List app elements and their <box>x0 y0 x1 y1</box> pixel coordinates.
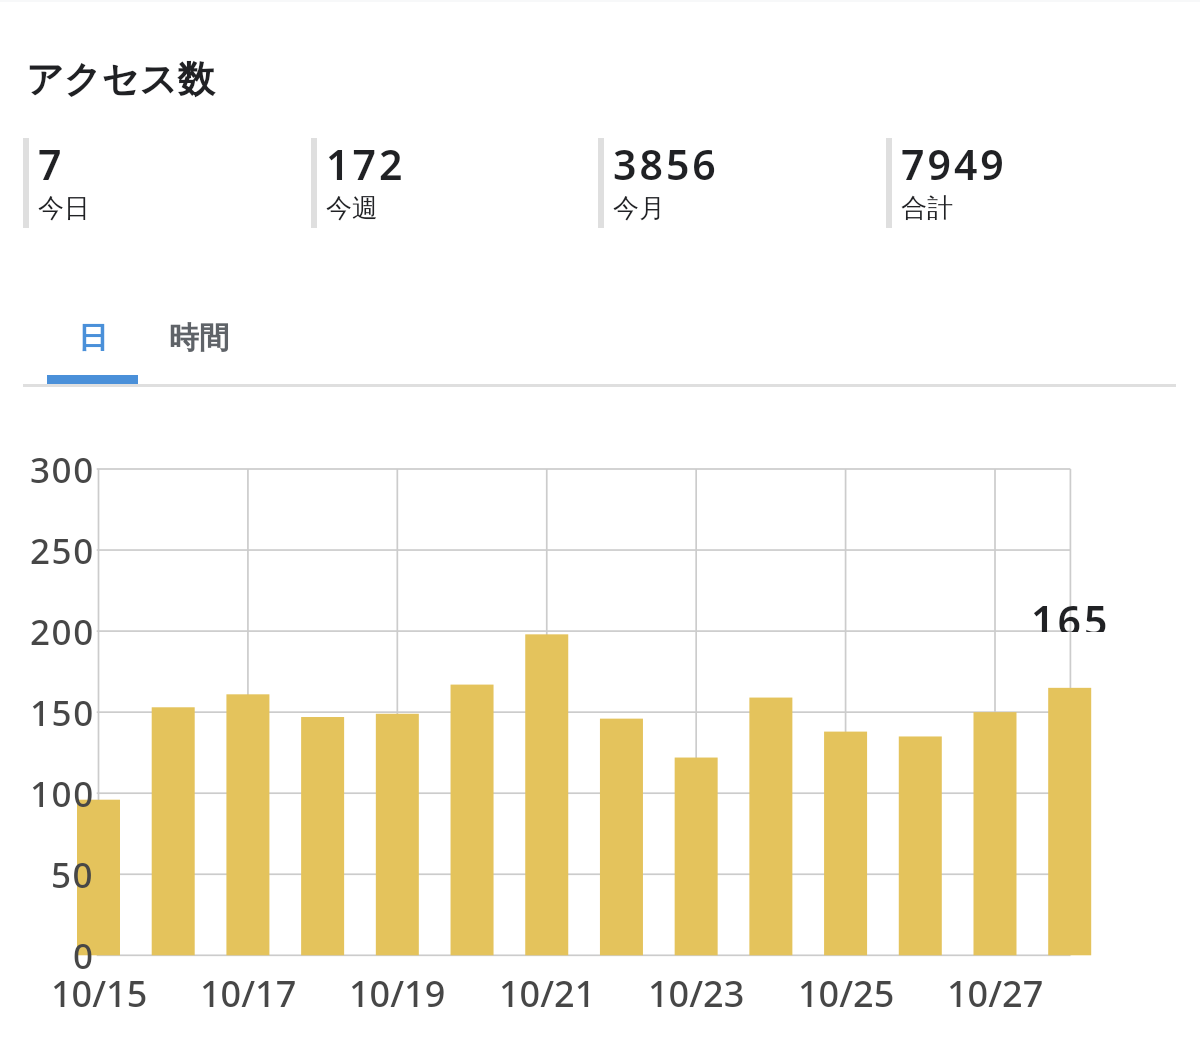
staticText: 300 <box>30 446 95 494</box>
button[interactable]: 7 <box>23 138 311 228</box>
staticText: 100 <box>30 770 95 818</box>
staticText: 165 <box>1031 592 1111 632</box>
staticText: 150 <box>30 689 95 737</box>
staticText: 50 <box>51 851 95 899</box>
staticText: 10/15 <box>51 969 148 1013</box>
button[interactable]: 時間 <box>138 296 259 380</box>
button[interactable]: 3856 <box>598 138 886 228</box>
other: Daily access bar chart <box>0 0 1200 1052</box>
staticText: 0 <box>73 932 95 980</box>
staticText: 200 <box>30 608 95 656</box>
staticText: 時間 <box>169 319 229 357</box>
staticText: 7 <box>38 136 65 192</box>
button[interactable]: 7949 <box>886 138 1174 228</box>
staticText: 10/17 <box>200 969 297 1013</box>
staticText: アクセス数 <box>26 56 215 103</box>
staticText: 250 <box>30 527 95 575</box>
button[interactable]: 日 <box>47 296 138 380</box>
button[interactable]: 172 <box>311 138 599 228</box>
staticText: 7949 <box>901 136 1007 192</box>
staticText: 3856 <box>613 136 719 192</box>
staticText: 10/25 <box>798 969 895 1013</box>
staticText: 172 <box>326 136 406 192</box>
staticText: 日 <box>78 319 108 357</box>
staticText: 10/27 <box>947 969 1044 1013</box>
staticText: 10/21 <box>499 969 596 1013</box>
staticText: 今日 <box>38 192 90 225</box>
staticText: 今月 <box>613 192 665 225</box>
staticText: 10/19 <box>349 969 446 1013</box>
staticText: 合計 <box>901 192 953 225</box>
staticText: 10/23 <box>648 969 745 1013</box>
staticText: 今週 <box>326 192 378 225</box>
